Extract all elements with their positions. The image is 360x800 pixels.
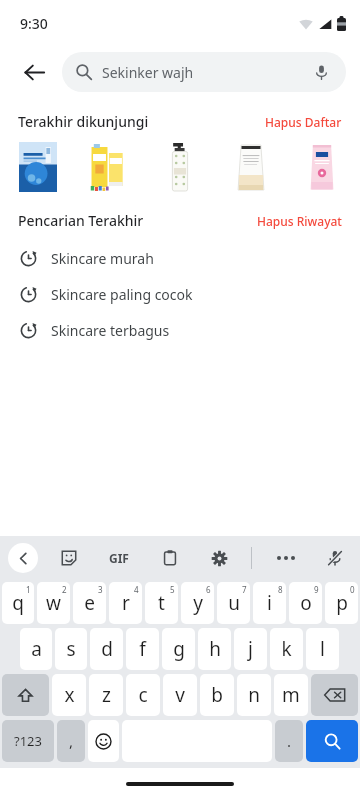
button[interactable]: d (90, 628, 123, 670)
staticText: 9 (314, 584, 319, 595)
button[interactable]: e (73, 582, 106, 624)
staticText: n (248, 682, 260, 708)
staticText: y (193, 590, 203, 616)
button[interactable]: , (57, 720, 85, 762)
staticText: c (138, 682, 148, 708)
button[interactable]: Search (306, 720, 358, 762)
button[interactable]: c (126, 674, 160, 716)
staticText: 6 (206, 584, 211, 595)
staticText: Terakhir dikunjungi (18, 112, 149, 131)
button[interactable]: Voice input off (320, 543, 350, 573)
button[interactable]: Stickers (54, 543, 84, 573)
staticText: 2 (62, 584, 67, 595)
staticText: , (69, 731, 74, 751)
button[interactable]: z (89, 674, 123, 716)
staticText: Skincare terbagus (51, 321, 170, 340)
button[interactable]: k (270, 628, 303, 670)
button[interactable]: h (198, 628, 231, 670)
button[interactable]: Back (14, 52, 54, 92)
button[interactable]: Emoji (88, 720, 119, 762)
staticText: e (84, 590, 95, 616)
staticText: g (173, 636, 185, 662)
staticText: 1 (26, 584, 31, 595)
button[interactable]: n (237, 674, 271, 716)
staticText: GIF (109, 550, 129, 566)
staticText: x (64, 682, 75, 708)
staticText: m (282, 682, 300, 708)
button[interactable] (302, 141, 342, 193)
button[interactable]: Voice search (310, 61, 332, 83)
button[interactable]: t (145, 582, 178, 624)
staticText: 7 (242, 584, 247, 595)
button[interactable]: ?123 (2, 720, 54, 762)
staticText: 3 (98, 584, 103, 595)
staticText: ?123 (14, 732, 42, 750)
button[interactable]: x (52, 674, 86, 716)
staticText: j (248, 636, 253, 662)
button[interactable]: Skincare murah (0, 240, 360, 276)
button[interactable]: p (325, 582, 358, 624)
staticText: . (287, 731, 292, 751)
button[interactable]: GIF (102, 543, 136, 573)
button[interactable]: m (274, 674, 308, 716)
staticText: Sekinker wajh (102, 63, 194, 82)
button[interactable]: o (289, 582, 322, 624)
button[interactable] (18, 141, 58, 193)
button[interactable]: a (20, 628, 52, 670)
button[interactable]: u (217, 582, 250, 624)
staticText: Hapus Riwayat (257, 213, 342, 229)
button[interactable]: Backspace (311, 674, 358, 716)
staticText: o (300, 590, 312, 616)
button[interactable]: s (55, 628, 87, 670)
staticText: v (175, 682, 185, 708)
button[interactable]: Clipboard (155, 543, 185, 573)
button[interactable]: Hapus Daftar (265, 114, 342, 130)
staticText: Pencarian Terakhir (18, 211, 144, 230)
staticText: i (267, 590, 272, 616)
staticText: l (320, 636, 325, 662)
button[interactable]: Skincare paling cocok (0, 276, 360, 312)
staticText: t (158, 590, 165, 616)
button[interactable]: g (162, 628, 195, 670)
staticText: 0 (350, 584, 355, 595)
button[interactable]: w (37, 582, 70, 624)
staticText: d (101, 636, 113, 662)
button[interactable] (89, 141, 129, 193)
staticText: s (66, 636, 76, 662)
button[interactable] (231, 141, 271, 193)
staticText: Skincare murah (51, 249, 154, 268)
button[interactable]: f (126, 628, 159, 670)
button[interactable]: b (200, 674, 234, 716)
button[interactable]: Back (8, 543, 38, 573)
button[interactable]: Settings (204, 543, 234, 573)
button[interactable]: More options (271, 543, 301, 573)
button[interactable]: r (109, 582, 142, 624)
button[interactable]: l (306, 628, 339, 670)
button[interactable]: Shift (2, 674, 49, 716)
staticText: b (211, 682, 223, 708)
staticText: z (102, 682, 111, 708)
staticText: Hapus Daftar (265, 114, 342, 130)
button[interactable]: j (234, 628, 267, 670)
staticText: q (12, 590, 24, 616)
button[interactable]: Skincare terbagus (0, 312, 360, 348)
staticText: f (139, 636, 146, 662)
staticText: p (336, 590, 348, 616)
button[interactable]: v (163, 674, 197, 716)
button[interactable]: . (275, 720, 303, 762)
staticText: w (46, 590, 61, 616)
button[interactable]: Hapus Riwayat (257, 213, 342, 229)
button[interactable]: Sekinker wajh (62, 52, 346, 92)
staticText: r (122, 590, 130, 616)
button[interactable]: i (253, 582, 286, 624)
staticText: 4 (134, 584, 139, 595)
staticText: u (228, 590, 240, 616)
button[interactable] (160, 141, 200, 193)
staticText: 9:30 (20, 14, 48, 33)
staticText: 8 (278, 584, 283, 595)
button[interactable]: q (2, 582, 34, 624)
staticText: a (31, 636, 42, 662)
staticText: Skincare paling cocok (51, 285, 193, 304)
button[interactable]: y (181, 582, 214, 624)
